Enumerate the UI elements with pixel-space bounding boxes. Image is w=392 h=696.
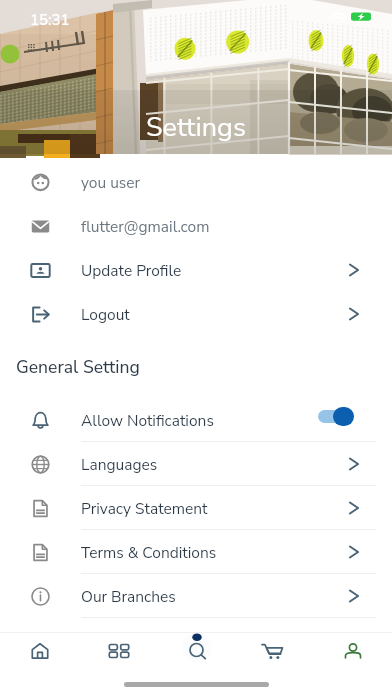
button[interactable]: Allow Notifications [0,398,392,442]
button[interactable]: flutter@gmail.com [0,204,392,248]
staticText: General Setting [16,355,140,379]
button[interactable]: Search [158,633,236,669]
staticText: Terms & Conditions [81,542,217,563]
staticText: Settings [146,109,246,146]
staticText: Languages [81,454,158,475]
staticText: Privacy Statement [81,498,208,519]
staticText: 15:31 [30,10,70,30]
staticText: Logout [81,304,130,325]
staticText: Our Branches [81,586,176,607]
button[interactable]: Profile [314,633,392,669]
button[interactable]: Terms & Conditions [0,530,392,574]
button[interactable]: Categories [79,633,158,669]
button[interactable]: Privacy Statement [0,486,392,530]
button[interactable]: Logout [0,292,392,336]
button[interactable]: Our Branches [0,574,392,618]
button[interactable]: you user [0,160,392,204]
button[interactable]: Cart [236,633,314,669]
button[interactable]: Languages [0,442,392,486]
staticText: you user [81,172,141,193]
button[interactable]: Update Profile [0,248,392,292]
button[interactable]: Home [0,633,79,669]
staticText: Update Profile [81,260,182,281]
staticText: flutter@gmail.com [81,216,210,237]
staticText: Allow Notifications [81,410,214,431]
